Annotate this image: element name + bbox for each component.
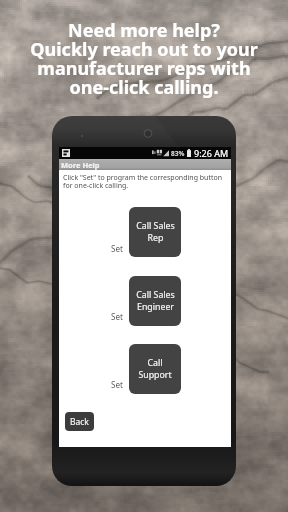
staticText: Call Sales Engineer	[136, 289, 175, 312]
button[interactable]: Call Sales Engineer	[129, 276, 181, 326]
button[interactable]: Call Support	[129, 344, 181, 394]
button[interactable]: Set	[111, 311, 124, 322]
button[interactable]: Set	[111, 243, 124, 254]
staticText: 83%	[171, 149, 185, 158]
button[interactable]: Call Sales Rep	[129, 207, 181, 257]
staticText: More Help	[61, 160, 100, 170]
button[interactable]: Set	[111, 379, 124, 390]
staticText: Call Sales Rep	[136, 220, 175, 243]
staticText: Set	[111, 243, 124, 254]
staticText: Set	[111, 311, 124, 322]
staticText: Set	[111, 379, 124, 390]
staticText: Call Support	[138, 357, 172, 380]
staticText: 9:26 AM	[194, 147, 229, 159]
staticText: Click "Set" to program the corresponding…	[63, 173, 222, 190]
button[interactable]: More Help	[59, 159, 231, 170]
button[interactable]: Back	[65, 412, 94, 431]
staticText: Need more help? Quickly reach out to you…	[0, 18, 288, 100]
staticText: Back	[70, 416, 89, 428]
